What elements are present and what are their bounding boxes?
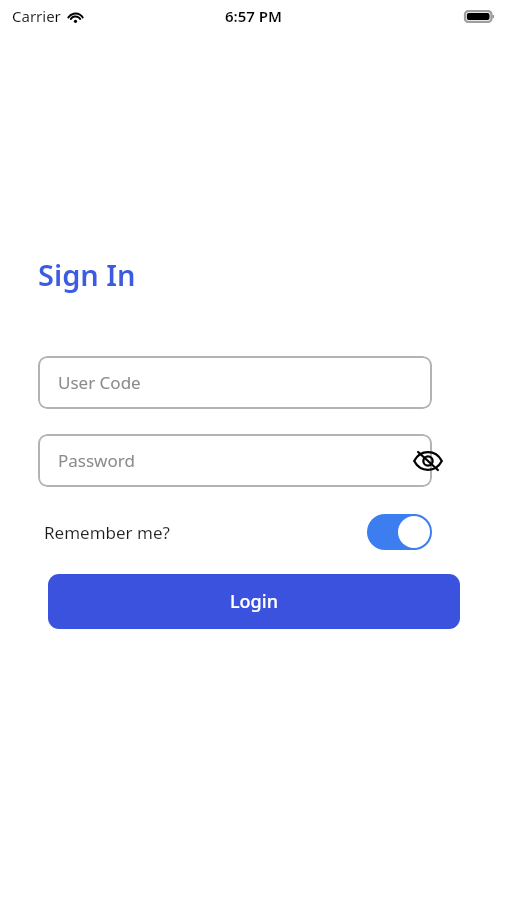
button[interactable]: Password xyxy=(38,434,432,487)
staticText: Remember me? xyxy=(44,521,170,544)
staticText: Login xyxy=(230,589,278,614)
staticText: User Code xyxy=(58,371,141,394)
button[interactable]: Login xyxy=(48,574,460,629)
button[interactable]: Show password xyxy=(406,439,450,483)
staticText: Sign In xyxy=(38,255,136,294)
button[interactable]: User Code xyxy=(38,356,432,409)
staticText: Password xyxy=(58,449,135,472)
staticText: 6:57 PM xyxy=(225,6,282,26)
staticText: Carrier xyxy=(12,6,61,26)
button[interactable]: Remember me toggle xyxy=(367,514,432,550)
